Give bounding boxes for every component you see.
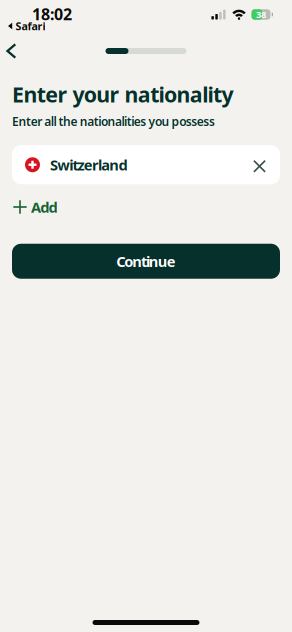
staticText: Enter your nationality (12, 80, 233, 108)
staticText: 38 (256, 8, 266, 21)
staticText: Continue (116, 251, 176, 271)
staticText: Switzerland (50, 155, 127, 174)
button[interactable]: Continue (12, 244, 280, 279)
staticText: Enter all the nationalities you possess (12, 113, 215, 129)
button[interactable]: Add (13, 192, 63, 222)
staticText: Safari (15, 19, 45, 33)
button[interactable]: Back (0, 37, 33, 65)
staticText: Add (31, 197, 57, 217)
staticText: 18:02 (32, 3, 72, 25)
button[interactable]: Switzerland (12, 145, 280, 184)
